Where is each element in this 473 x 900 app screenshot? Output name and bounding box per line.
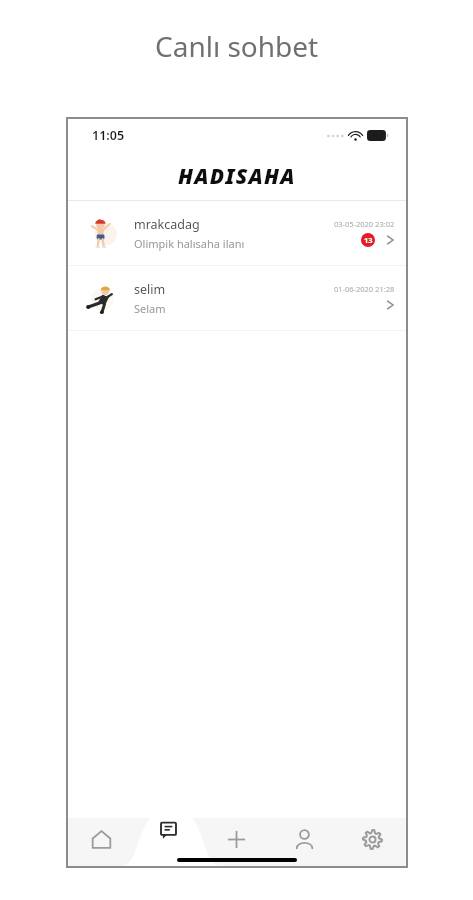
button[interactable]: mrakcadag: [68, 201, 406, 265]
button[interactable]: Profile: [270, 818, 338, 866]
button[interactable]: Chats: [135, 818, 202, 866]
staticText: 13: [364, 235, 373, 245]
other: Open conversation: [386, 298, 395, 312]
staticText: HADISAHA: [178, 162, 296, 191]
staticText: 01-06-2020 21:28: [334, 284, 395, 294]
button[interactable]: Add: [202, 818, 270, 866]
staticText: Selam: [134, 301, 166, 316]
button[interactable]: selim: [68, 266, 406, 330]
button[interactable]: Home: [68, 818, 135, 866]
staticText: selim: [134, 281, 166, 298]
other: Open conversation: [386, 233, 395, 247]
staticText: 03-05-2020 23:02: [334, 219, 395, 229]
button[interactable]: Settings: [338, 818, 406, 866]
staticText: 11:05: [92, 127, 125, 144]
staticText: Canlı sohbet: [155, 27, 319, 65]
staticText: Olimpik halısaha ilanı: [134, 236, 245, 251]
staticText: mrakcadag: [134, 216, 200, 233]
